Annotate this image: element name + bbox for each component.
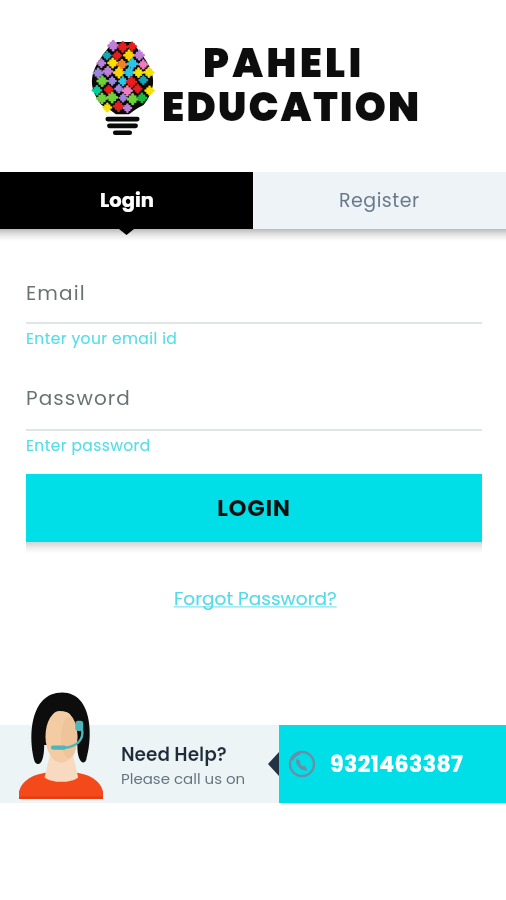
staticText: Please call us on [121, 768, 246, 789]
staticText: Email [26, 279, 86, 307]
staticText: Forgot Password? [174, 586, 337, 612]
staticText: Need Help? [121, 742, 227, 768]
button[interactable]: Password [26, 377, 482, 449]
button[interactable]: LOGIN [26, 474, 482, 542]
staticText: Password [26, 384, 131, 412]
staticText: Enter your email id [26, 328, 178, 350]
button[interactable]: Email [26, 272, 482, 344]
staticText: PAHELI [203, 35, 365, 91]
staticText: Login [100, 187, 154, 214]
staticText: LOGIN [217, 492, 291, 524]
staticText: EDUCATION [162, 79, 422, 135]
staticText: Register [339, 187, 420, 214]
staticText: Enter password [26, 435, 151, 457]
button[interactable]: Login [0, 172, 253, 229]
button[interactable]: Forgot Password? [174, 586, 337, 612]
button[interactable]: 9321463387 [279, 725, 506, 803]
staticText: 9321463387 [330, 749, 464, 780]
button[interactable]: Register [253, 172, 506, 229]
